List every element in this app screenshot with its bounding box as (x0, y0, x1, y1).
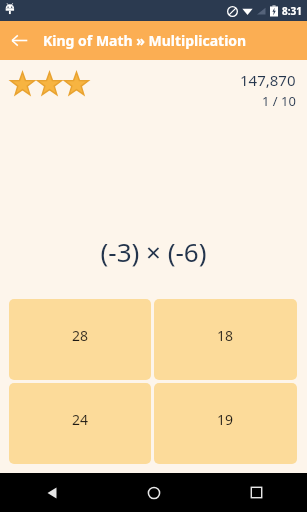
staticText: 24 (72, 410, 89, 429)
button[interactable]: Home (103, 473, 205, 512)
button[interactable]: Back (0, 473, 103, 512)
staticText: 8:31 (282, 4, 302, 18)
button[interactable]: Recent apps (205, 473, 307, 512)
button[interactable]: 18 (154, 299, 297, 380)
staticText: 19 (217, 410, 234, 429)
staticText: (-3) × (-6) (100, 234, 207, 269)
staticText: 1 / 10 (262, 92, 296, 110)
button[interactable]: 24 (9, 383, 151, 464)
button[interactable]: Back (0, 21, 39, 60)
button[interactable]: 19 (154, 383, 297, 464)
staticText: 28 (72, 326, 89, 345)
staticText: 147,870 (240, 70, 296, 90)
button[interactable]: 28 (9, 299, 151, 380)
staticText: King of Math » Multiplication (43, 31, 247, 50)
staticText: 18 (217, 326, 234, 345)
